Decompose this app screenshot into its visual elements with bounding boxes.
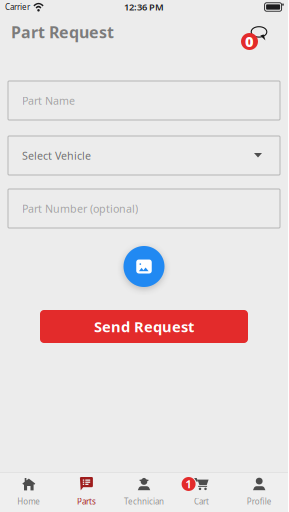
staticText: Send Request <box>94 317 194 336</box>
staticText: Part Number (optional) <box>22 201 138 216</box>
button[interactable]: Messages <box>240 18 270 50</box>
staticText: Parts <box>77 496 96 507</box>
button[interactable]: 1 <box>173 472 230 512</box>
staticText: 0 <box>245 31 254 51</box>
staticText: Profile <box>247 496 272 507</box>
staticText: Cart <box>194 496 209 507</box>
button[interactable]: Home <box>0 472 58 512</box>
button[interactable]: Send Request <box>40 310 248 343</box>
button[interactable]: Profile <box>230 472 288 512</box>
staticText: Technician <box>124 496 164 507</box>
staticText: Part Request <box>11 21 114 43</box>
button[interactable]: Parts <box>58 472 115 512</box>
staticText: 12:36 PM <box>124 1 164 13</box>
staticText: Select Vehicle <box>22 148 91 163</box>
staticText: Home <box>17 496 40 507</box>
button[interactable]: Technician <box>115 472 173 512</box>
button[interactable]: Add photo <box>123 246 164 287</box>
staticText: Part Name <box>22 93 75 108</box>
staticText: Carrier <box>5 2 30 12</box>
staticText: 1 <box>186 477 192 491</box>
